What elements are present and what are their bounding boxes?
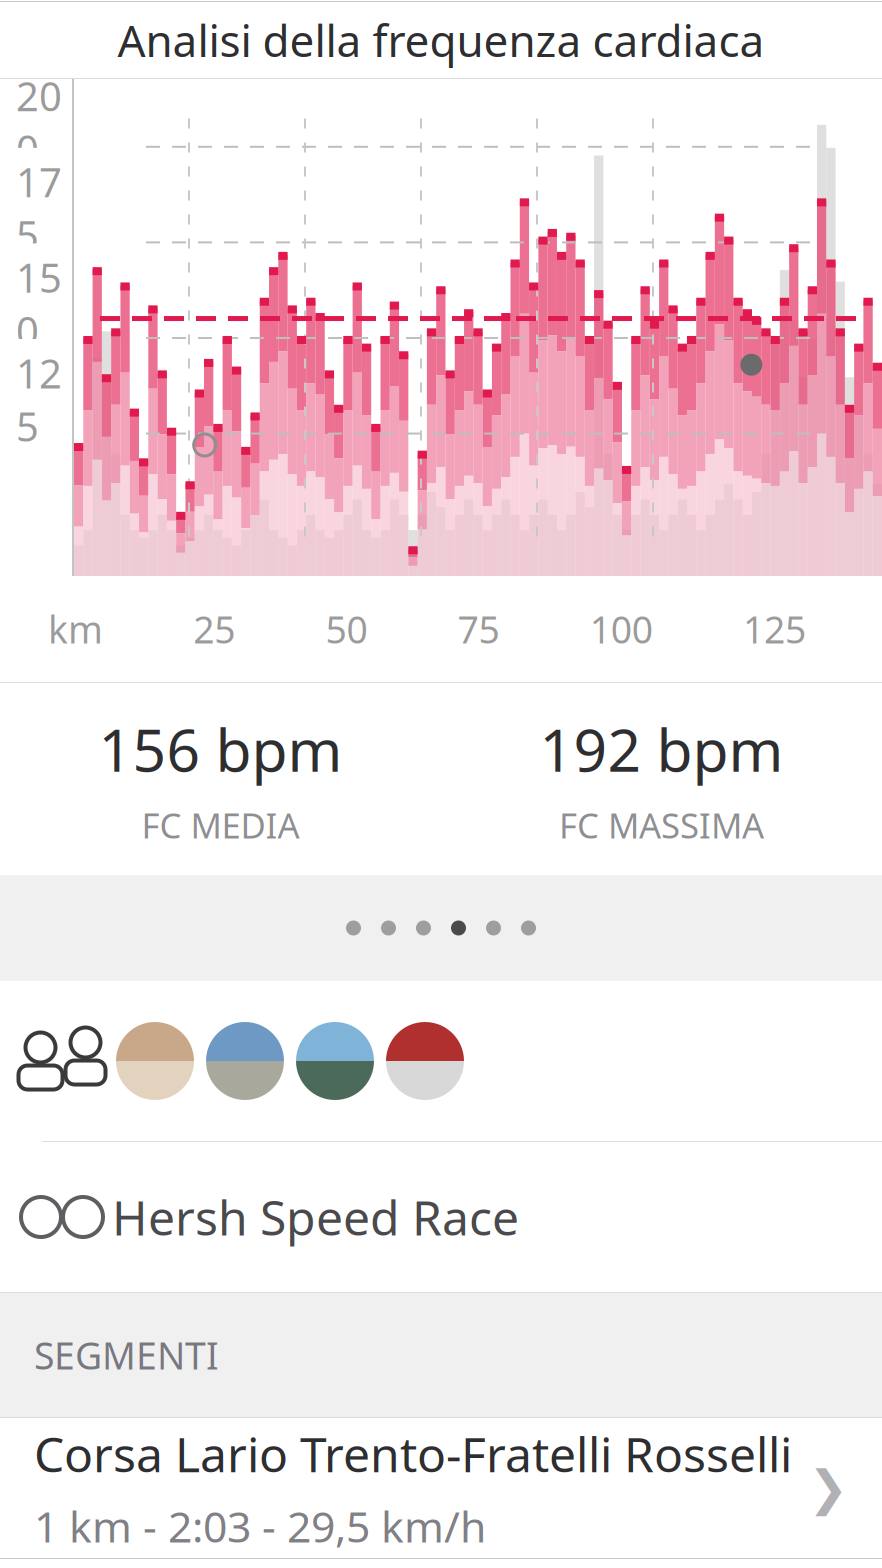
- staticText: Corsa Lario Trento-Fratelli Rosselli: [34, 1422, 792, 1485]
- staticText: 75: [458, 604, 500, 654]
- button[interactable]: ❮: [0, 0, 432, 8]
- staticText: 100: [590, 604, 653, 654]
- staticText: FC MASSIMA: [559, 802, 764, 848]
- staticText: 25: [193, 604, 235, 654]
- staticText: 50: [325, 604, 367, 654]
- staticText: 125: [743, 604, 806, 654]
- staticText: 192 bpm: [539, 710, 783, 788]
- staticText: 175: [16, 155, 62, 261]
- staticText: ❯: [808, 1461, 848, 1515]
- staticText: km: [48, 604, 103, 654]
- button[interactable]: Hersh Speed Race: [0, 1142, 882, 1292]
- staticText: 125: [16, 346, 62, 452]
- staticText: 150: [16, 251, 62, 357]
- staticText: Analisi della frequenza cardiaca: [117, 11, 764, 69]
- staticText: FC MEDIA: [141, 802, 299, 848]
- staticText: 200: [16, 69, 62, 175]
- button[interactable]: [0, 981, 882, 1141]
- button[interactable]: Corsa Lario Trento-Fratelli Rosselli: [0, 1418, 882, 1558]
- staticText: 156 bpm: [98, 710, 342, 788]
- staticText: SEGMENTI: [34, 1330, 219, 1380]
- staticText: 1 km - 2:03 - 29,5 km/h: [34, 1497, 486, 1554]
- staticText: Hersh Speed Race: [112, 1185, 519, 1249]
